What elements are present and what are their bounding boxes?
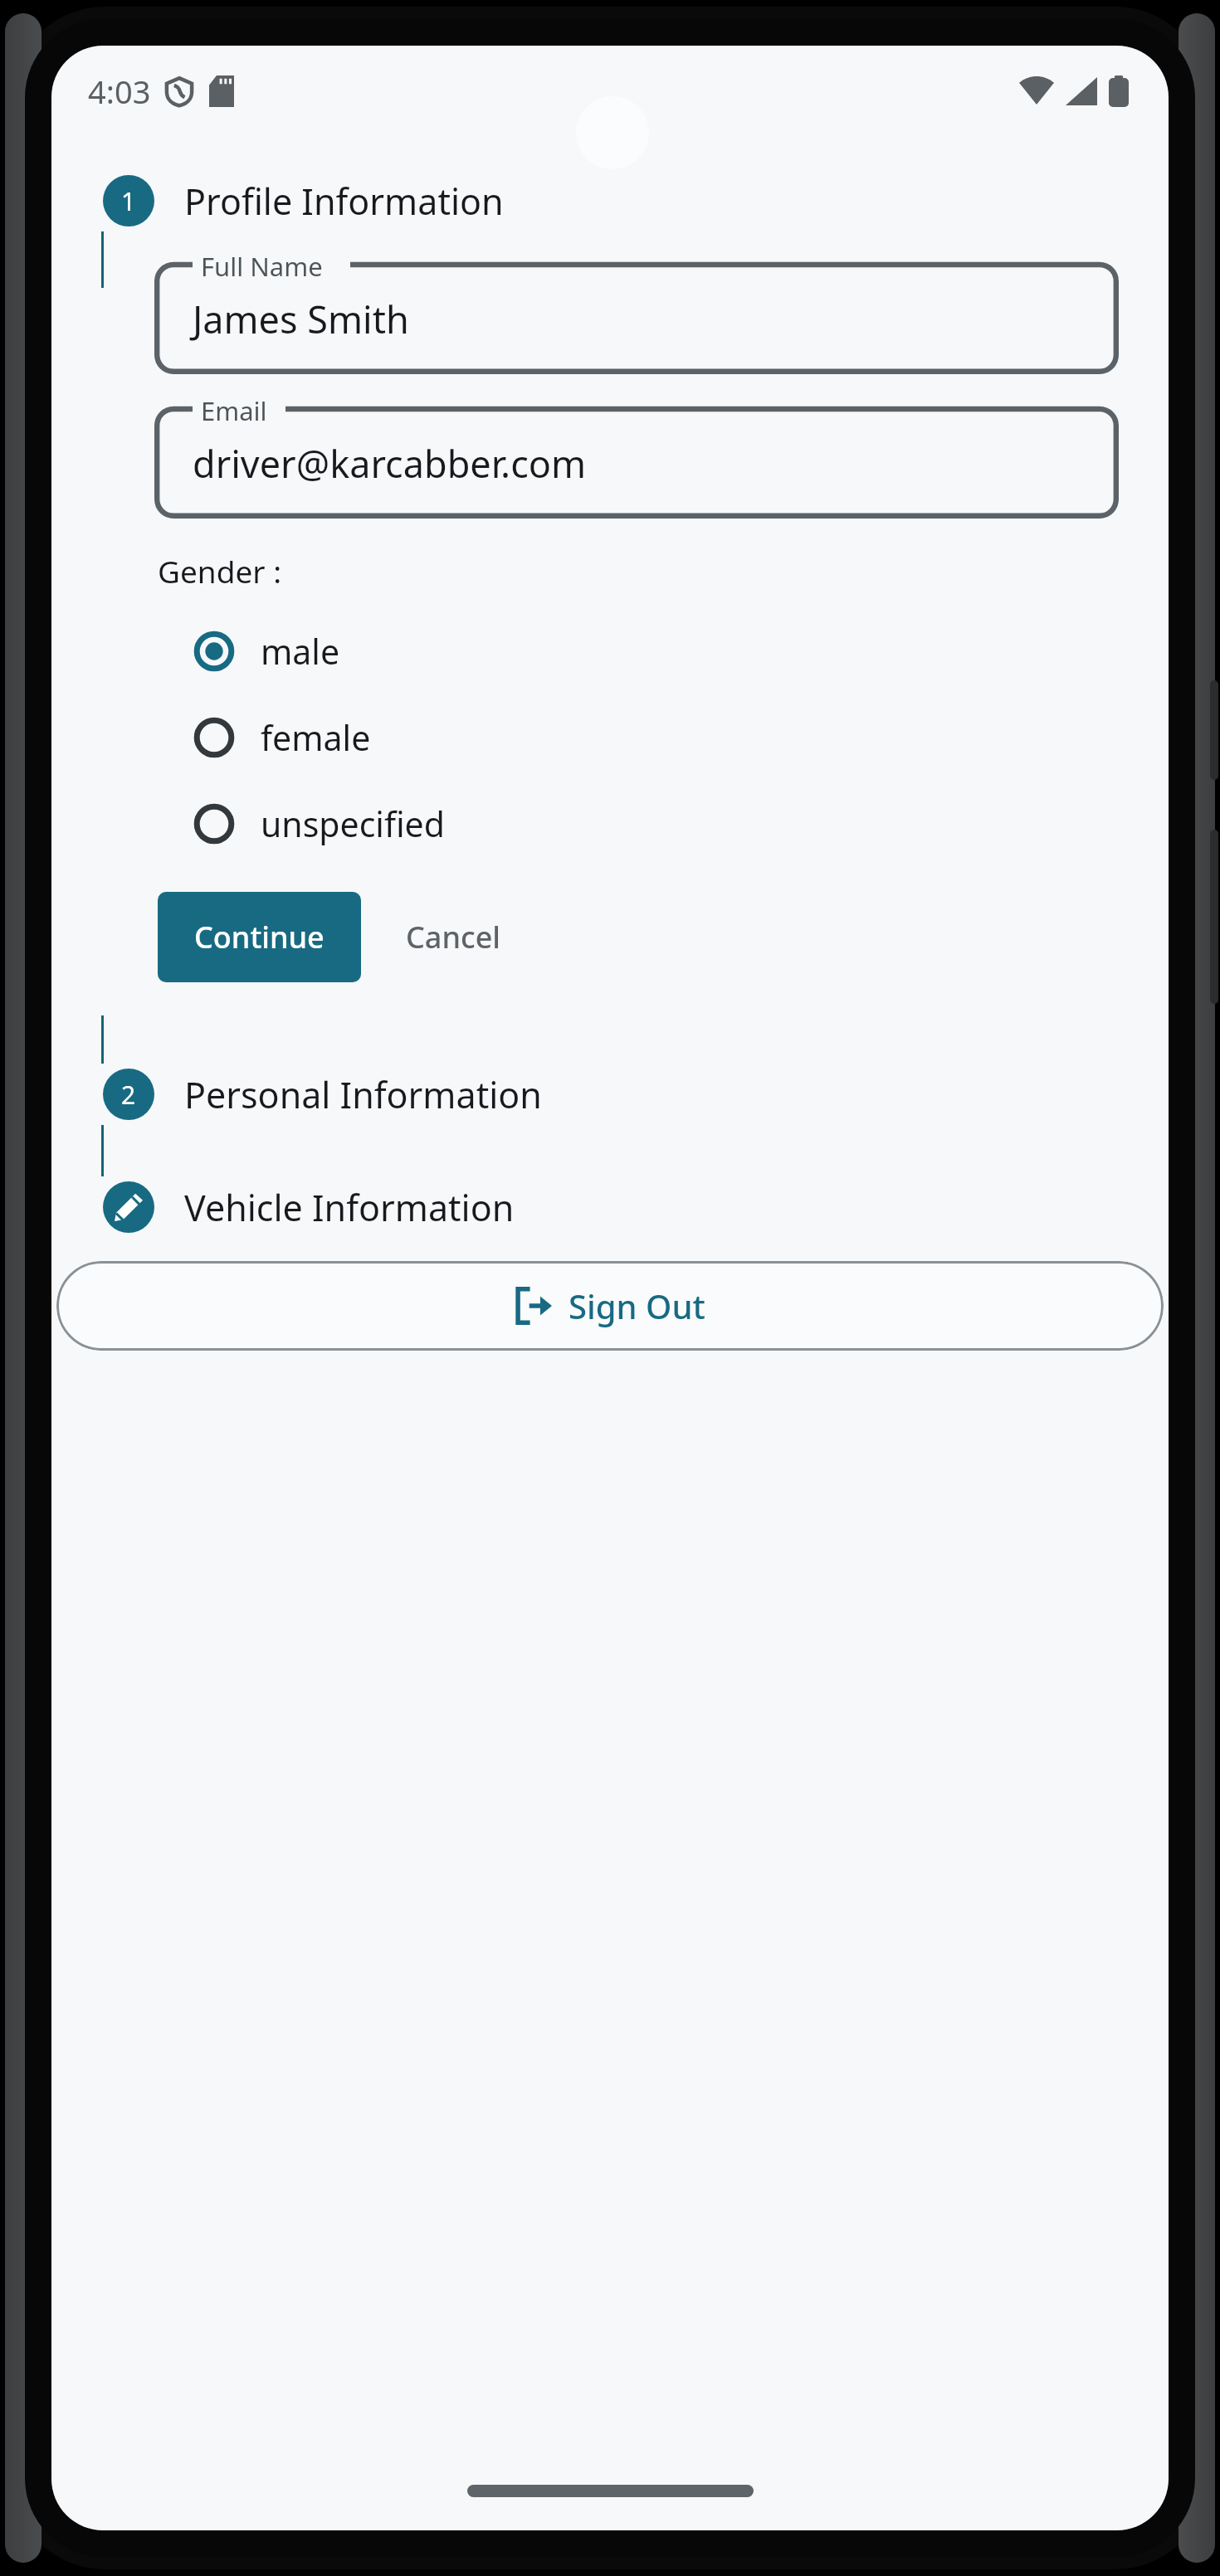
staticText: male	[261, 628, 340, 674]
staticText: unspecified	[261, 801, 445, 847]
staticText: James Smith	[193, 294, 409, 344]
button[interactable]: unspecified	[154, 792, 1119, 855]
staticText: female	[261, 714, 371, 761]
other: Edit Vehicle Information	[103, 1181, 154, 1233]
staticText: Cancel	[406, 917, 501, 957]
button[interactable]: Email	[154, 394, 1119, 519]
staticText: 4:03	[88, 70, 151, 113]
button[interactable]: 2	[51, 1064, 1169, 1125]
button[interactable]: female	[154, 706, 1119, 769]
button[interactable]: 1	[51, 170, 1169, 231]
staticText: Sign Out	[569, 1283, 705, 1328]
staticText: Gender :	[158, 550, 282, 592]
button[interactable]: Continue	[158, 892, 361, 982]
staticText: Vehicle Information	[184, 1183, 515, 1232]
button[interactable]: male	[154, 620, 1119, 683]
staticText: 2	[121, 1078, 136, 1112]
staticText: Personal Information	[184, 1070, 542, 1119]
button[interactable]: Full Name	[154, 250, 1119, 374]
staticText: 1	[121, 184, 136, 218]
staticText: Email	[201, 393, 267, 428]
staticText: Profile Information	[184, 177, 504, 226]
staticText: Full Name	[201, 249, 323, 284]
button[interactable]: Edit Vehicle Information	[51, 1176, 1169, 1238]
staticText: Continue	[194, 917, 325, 957]
button[interactable]: Cancel	[381, 892, 526, 982]
staticText: driver@karcabber.com	[193, 438, 587, 489]
button[interactable]: Sign Out	[56, 1261, 1164, 1351]
